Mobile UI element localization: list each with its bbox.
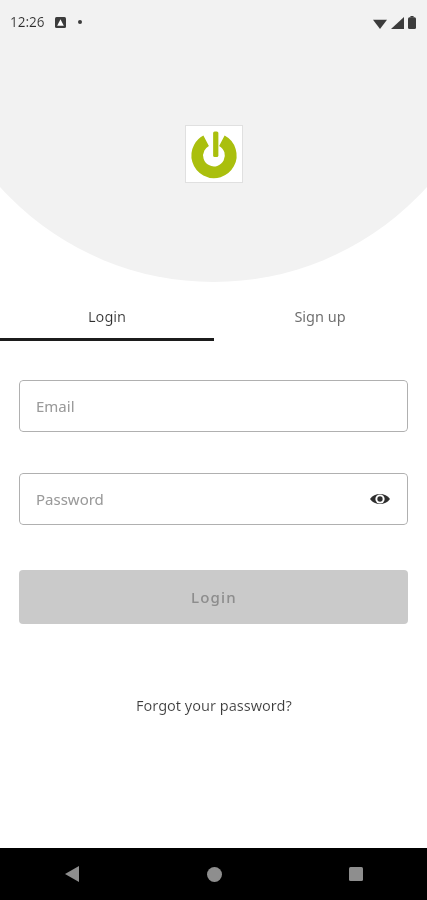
button[interactable]: Recent apps bbox=[285, 848, 427, 900]
staticText: 12:26 bbox=[10, 13, 45, 31]
button[interactable]: Email bbox=[19, 380, 408, 432]
staticText: Email bbox=[36, 396, 75, 416]
staticText: Forgot your password? bbox=[136, 695, 292, 715]
button[interactable]: Password bbox=[19, 473, 408, 525]
staticText: Password bbox=[36, 489, 104, 509]
button[interactable]: Back bbox=[0, 848, 143, 900]
staticText: Login bbox=[191, 587, 237, 607]
button[interactable]: Home bbox=[143, 848, 285, 900]
button[interactable]: Forgot your password? bbox=[124, 689, 304, 721]
staticText: Sign up bbox=[294, 306, 346, 326]
staticText: Login bbox=[88, 306, 126, 326]
button[interactable]: Show password bbox=[365, 484, 395, 514]
button[interactable]: Sign up bbox=[213, 294, 427, 338]
button[interactable]: Login bbox=[19, 570, 408, 624]
button[interactable]: Login bbox=[0, 294, 213, 338]
